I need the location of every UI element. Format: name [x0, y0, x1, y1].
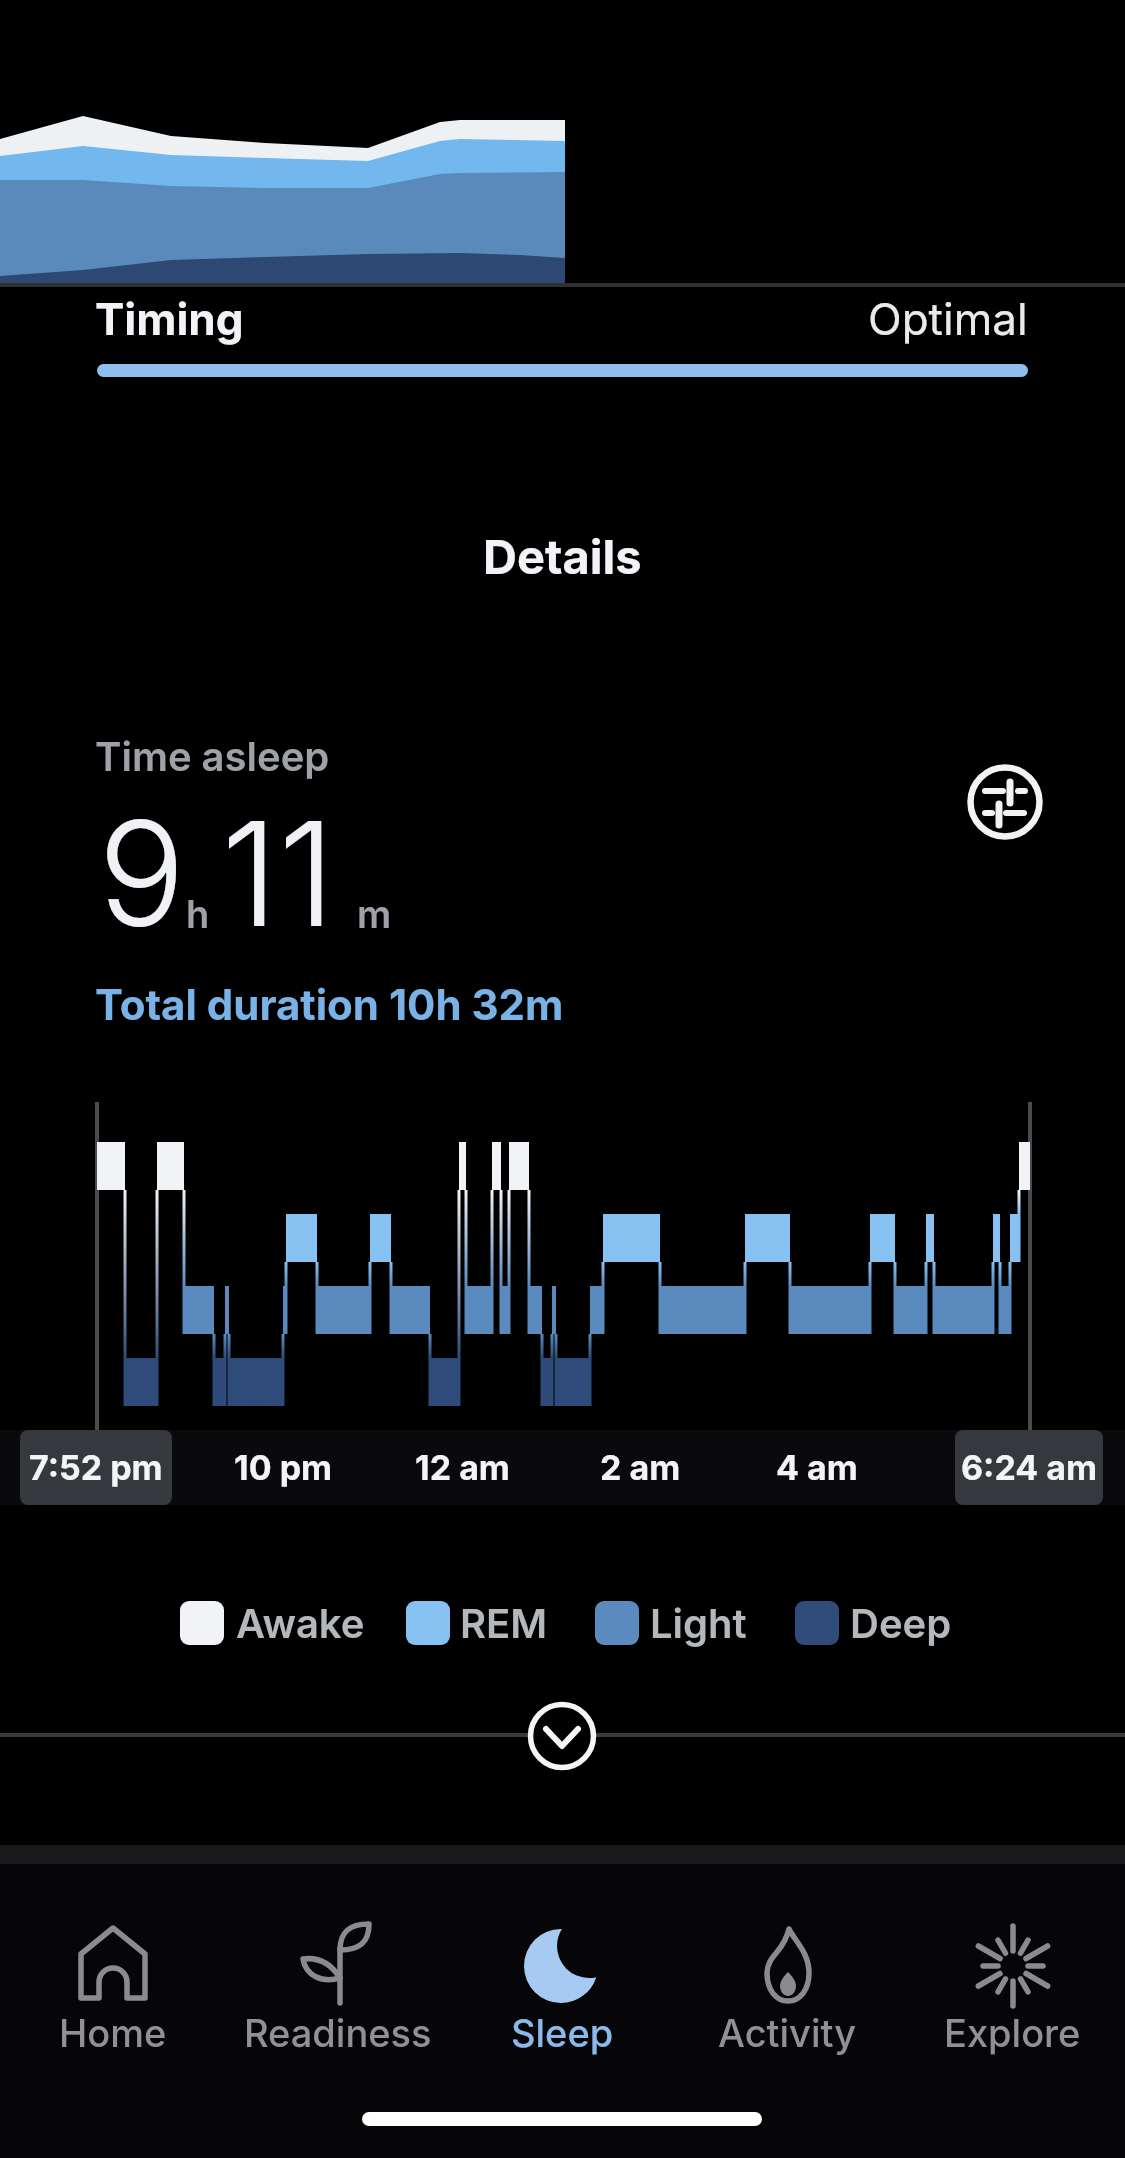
staticText: Time asleep	[95, 732, 330, 780]
staticText: Light	[650, 1599, 747, 1647]
button[interactable]: Activity	[675, 1926, 900, 2096]
staticText: 7:52 pm	[29, 1447, 163, 1488]
staticText: Timing	[95, 292, 244, 345]
staticText: 2 am	[600, 1447, 681, 1488]
button[interactable]: Readiness	[225, 1926, 450, 2096]
staticText: 4 am	[776, 1447, 858, 1488]
button[interactable]: Explore	[900, 1926, 1125, 2096]
staticText: Explore	[944, 2010, 1081, 2056]
staticText: 10 pm	[234, 1447, 333, 1488]
staticText: 9	[98, 786, 186, 936]
staticText: Readiness	[244, 2010, 432, 2056]
staticText: Total duration 10h 32m	[95, 979, 564, 1030]
staticText: 11	[221, 786, 336, 936]
staticText: Home	[59, 2010, 167, 2056]
staticText: h	[186, 891, 210, 937]
staticText: REM	[460, 1599, 548, 1647]
staticText: Optimal	[868, 292, 1028, 345]
button[interactable]	[527, 1701, 597, 1771]
button[interactable]: Home	[0, 1926, 225, 2096]
staticText: m	[357, 891, 392, 937]
staticText: Deep	[850, 1599, 952, 1647]
staticText: Details	[483, 528, 642, 585]
staticText: Sleep	[511, 2010, 614, 2056]
button[interactable]: Sleep	[450, 1926, 675, 2096]
button[interactable]	[967, 764, 1043, 840]
staticText: 6:24 am	[961, 1447, 1098, 1488]
staticText: Activity	[718, 2010, 857, 2056]
staticText: 12 am	[415, 1447, 510, 1488]
staticText: Awake	[236, 1599, 365, 1647]
